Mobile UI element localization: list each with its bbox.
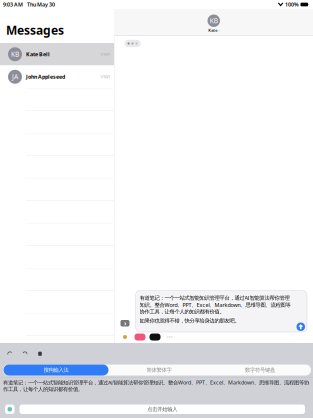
button[interactable]: 数字符号键盘: [209, 364, 310, 375]
staticText: Thu May 30: [27, 1, 55, 8]
button[interactable]: 搜狗输入法: [3, 364, 108, 375]
button[interactable]: Undo: [7, 351, 13, 357]
staticText: 有道笔记：一个一站式智能知识管理平台，通过AI智能算法帮你管理知识。整合Word…: [139, 294, 290, 315]
staticText: ›: [124, 319, 126, 328]
staticText: JA: [12, 72, 18, 81]
staticText: 1/10/1: [100, 74, 110, 79]
staticText: 数字符号键盘: [245, 367, 275, 373]
staticText: 100%: [285, 1, 299, 8]
button[interactable]: Redo: [22, 351, 28, 357]
staticText: Messages: [6, 22, 64, 38]
staticText: KB: [11, 50, 19, 59]
button[interactable]: Music: [147, 332, 162, 341]
button[interactable]: 简体繁体字: [108, 364, 209, 375]
staticText: ›: [218, 27, 219, 33]
staticText: Kate Bell: [26, 51, 50, 58]
button[interactable]: Send: [296, 322, 305, 331]
button[interactable]: More: [162, 332, 177, 341]
staticText: KB: [210, 16, 218, 25]
button[interactable]: KB: [114, 9, 313, 35]
staticText: 如果你也觉得不错，快分享给身边的朋友吧。: [139, 317, 239, 324]
staticText: •••: [167, 334, 173, 340]
button[interactable]: Emoji: [5, 404, 14, 414]
staticText: 有道笔记：一个一站式智能知识管理平台，通过AI智能算法帮你管理知识。整合Word…: [3, 379, 309, 392]
button[interactable]: JA: [0, 65, 114, 88]
staticText: Kate: [208, 27, 217, 33]
staticText: 搜狗输入法: [43, 367, 68, 373]
staticText: 简体繁体字: [146, 367, 171, 373]
button[interactable]: 点击开始输入: [19, 404, 305, 414]
button[interactable]: App Store: [117, 332, 132, 341]
button[interactable]: More apps: [120, 320, 129, 332]
staticText: 1/10/1: [100, 52, 110, 57]
button[interactable]: Photos: [132, 332, 147, 341]
button[interactable]: Paste: [37, 351, 43, 357]
staticText: 点击开始输入: [147, 406, 177, 413]
button[interactable]: KB: [0, 43, 114, 65]
staticText: 9:03 AM: [3, 1, 23, 8]
staticText: John Appleseed: [26, 73, 65, 80]
